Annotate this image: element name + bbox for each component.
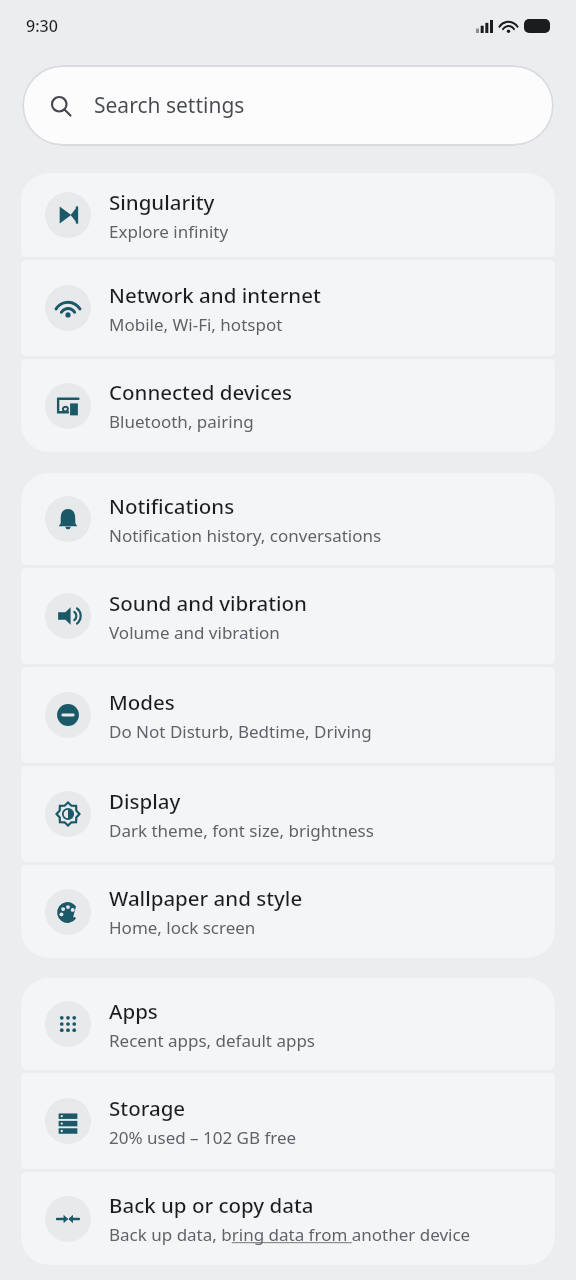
button[interactable]: Storage — [21, 1073, 555, 1169]
staticText: Recent apps, default apps — [109, 1029, 316, 1052]
staticText: 9:30 — [26, 15, 58, 37]
staticText: Home, lock screen — [109, 916, 256, 939]
staticText: Notification history, conversations — [109, 524, 382, 547]
staticText: Notifications — [109, 492, 235, 520]
staticText: Mobile, Wi-Fi, hotspot — [109, 313, 283, 336]
staticText: Volume and vibration — [109, 621, 280, 644]
staticText: Connected devices — [109, 378, 292, 406]
staticText: Back up data, bring data from another de… — [109, 1223, 471, 1246]
staticText: Display — [109, 787, 181, 815]
staticText: Wallpaper and style — [109, 884, 303, 912]
button[interactable]: Sound and vibration — [21, 568, 555, 664]
staticText: 20% used – 102 GB free — [109, 1126, 297, 1149]
button[interactable]: Notifications — [21, 473, 555, 565]
button[interactable]: Wallpaper and style — [21, 865, 555, 958]
button[interactable]: Singularity — [21, 173, 555, 257]
staticText: Storage — [109, 1094, 186, 1122]
staticText: Modes — [109, 688, 175, 716]
staticText: Explore infinity — [109, 220, 229, 243]
button[interactable]: Connected devices — [21, 359, 555, 452]
button[interactable]: Modes — [21, 667, 555, 763]
button[interactable]: Back up or copy data — [21, 1172, 555, 1265]
button[interactable]: Apps — [21, 978, 555, 1070]
staticText: Apps — [109, 997, 158, 1025]
staticText: Search settings — [94, 91, 245, 120]
staticText: Back up or copy data — [109, 1191, 314, 1219]
staticText: Dark theme, font size, brightness — [109, 819, 374, 842]
button[interactable]: Display — [21, 766, 555, 862]
staticText: Bluetooth, pairing — [109, 410, 254, 433]
staticText: Network and internet — [109, 281, 321, 309]
button[interactable]: Search settings — [22, 65, 554, 146]
staticText: Sound and vibration — [109, 589, 307, 617]
staticText: Do Not Disturb, Bedtime, Driving — [109, 720, 372, 743]
button[interactable]: Network and internet — [21, 260, 555, 356]
staticText: Singularity — [109, 188, 215, 216]
